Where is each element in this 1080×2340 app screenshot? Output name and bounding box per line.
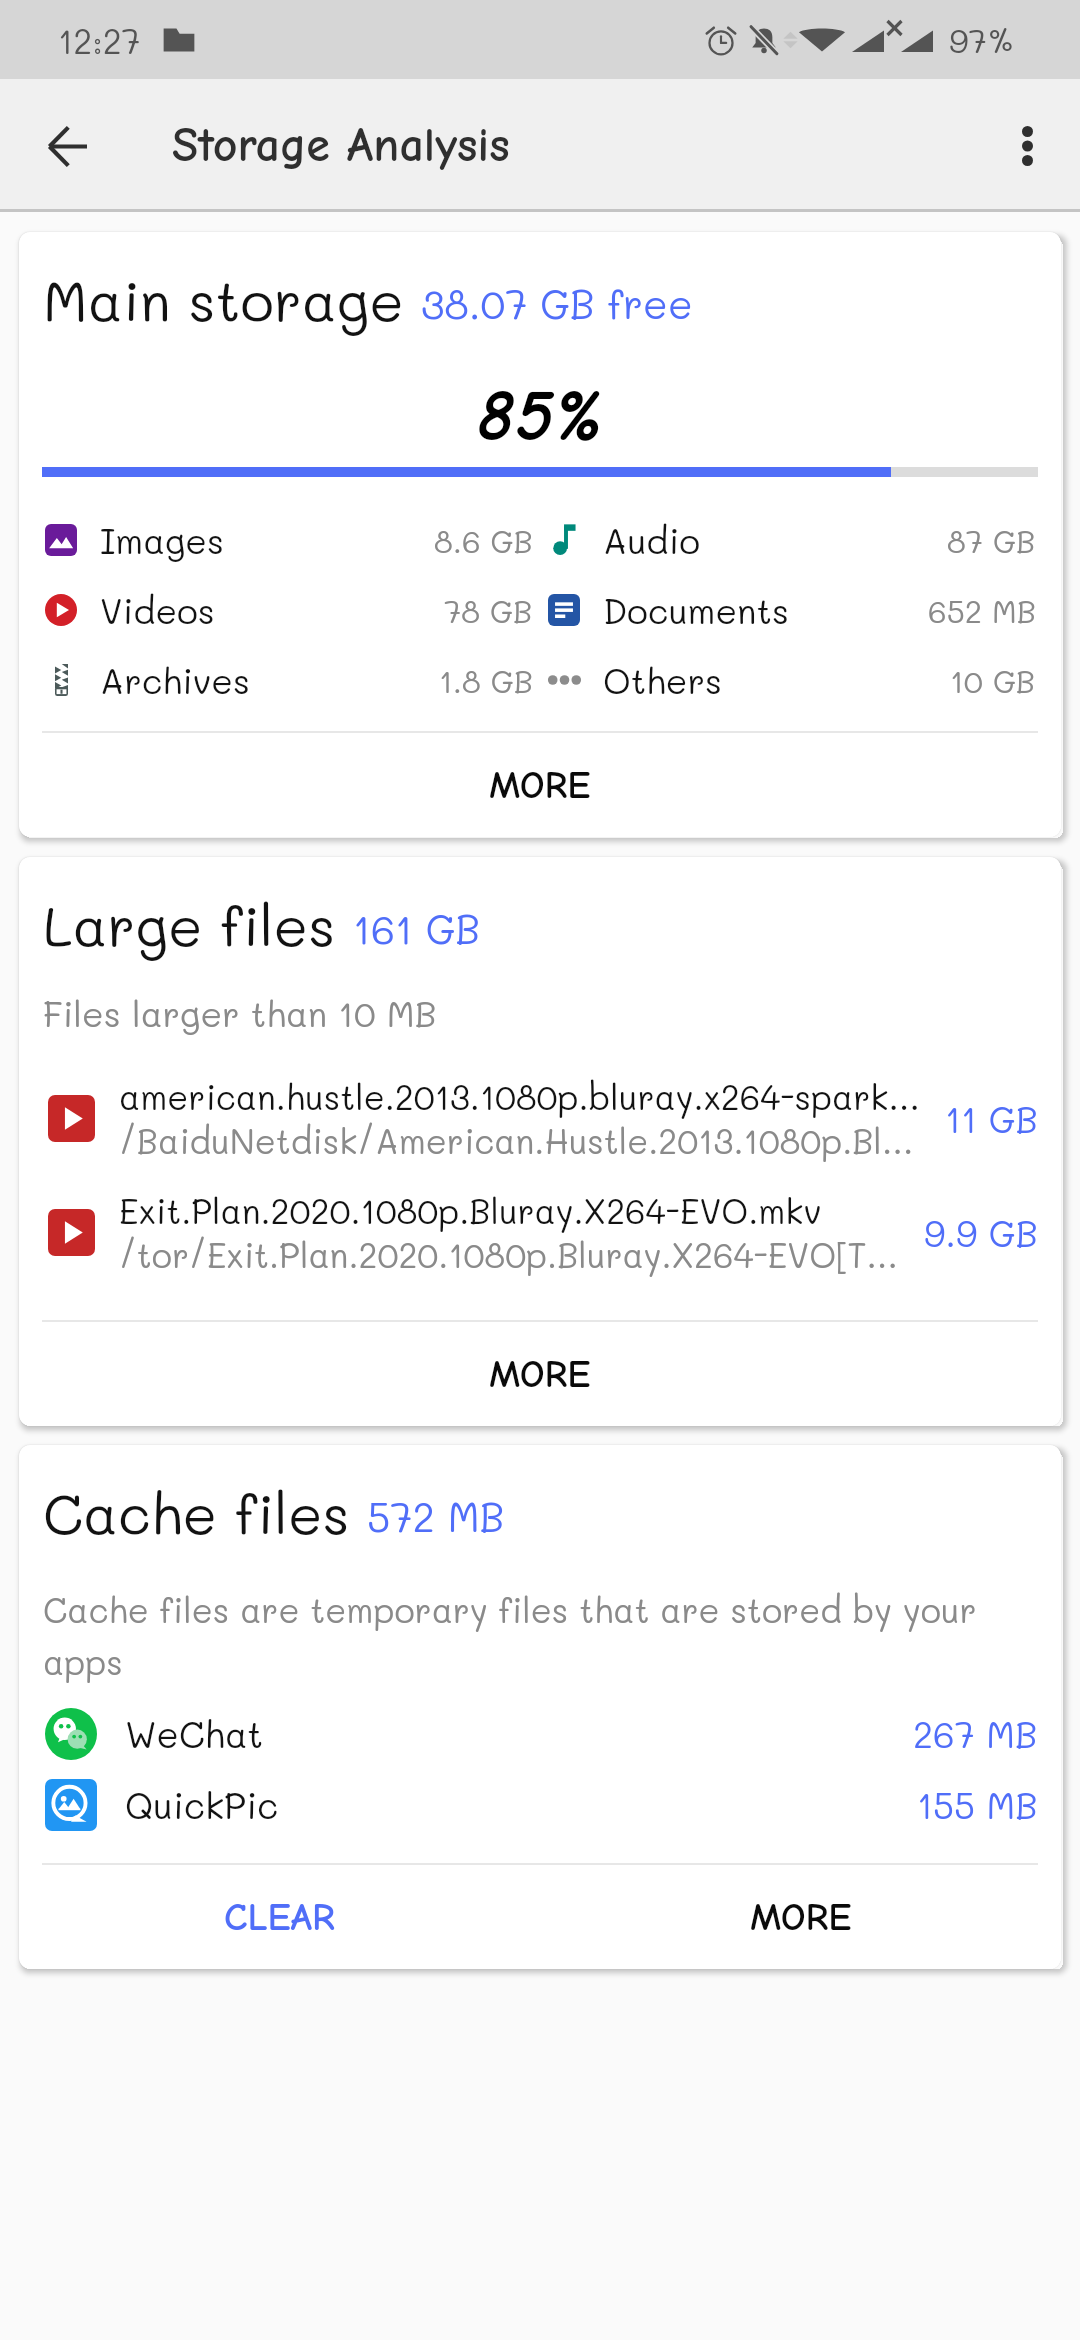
staticText: 8.6 GB [434, 520, 533, 560]
button[interactable]: WeChat [19, 1698, 1061, 1769]
button[interactable]: CLEAR [19, 1865, 540, 1969]
button[interactable]: american.hustle.2013.1080p.bluray.x264-s… [19, 1074, 1061, 1162]
staticText: Files larger than 10 MB [43, 990, 437, 1036]
button[interactable]: QuickPic [19, 1769, 1061, 1840]
button[interactable]: Others [547, 645, 1036, 715]
button[interactable]: Archives [44, 645, 533, 715]
staticText: 572 MB [367, 1490, 505, 1542]
button[interactable]: Audio [547, 505, 1036, 575]
button[interactable]: Images [44, 505, 533, 575]
staticText: QuickPic [125, 1781, 279, 1828]
staticText: 78 GB [444, 590, 533, 630]
staticText: 161 GB [353, 902, 481, 954]
button[interactable]: Documents [547, 575, 1036, 645]
staticText: american.hustle.2013.1080p.bluray.x264-s… [119, 1074, 920, 1118]
staticText: MORE [489, 1352, 591, 1397]
staticText: Cache files [43, 1476, 350, 1549]
button[interactable]: MORE [19, 733, 1061, 837]
staticText: 85% [19, 375, 1061, 458]
staticText: MORE [750, 1895, 852, 1940]
button[interactable]: Exit.Plan.2020.1080p.Bluray.X264-EVO.mkv [19, 1188, 1061, 1276]
staticText: Audio [603, 517, 701, 563]
staticText: Images [100, 517, 225, 563]
staticText: /BaiduNetdisk/American.Hustle.2013.1080p… [119, 1118, 914, 1162]
staticText: MORE [489, 763, 591, 808]
staticText: Documents [603, 587, 789, 633]
staticText: Videos [100, 587, 215, 633]
staticText: 652 MB [928, 590, 1036, 630]
button[interactable]: Videos [44, 575, 533, 645]
staticText: 38.07 GB free [421, 277, 693, 329]
button[interactable]: MORE [540, 1865, 1061, 1969]
staticText: Archives [100, 657, 251, 703]
staticText: 11 GB [945, 1095, 1038, 1142]
staticText: Main storage [43, 263, 404, 336]
staticText: 10 GB [950, 660, 1036, 700]
staticText: /tor/Exit.Plan.2020.1080p.Bluray.X264-EV… [119, 1232, 898, 1276]
staticText: 87 GB [947, 520, 1036, 560]
staticText: Large files [43, 888, 336, 961]
staticText: Storage Analysis [172, 118, 510, 173]
button[interactable]: More options [982, 101, 1072, 191]
staticText: 12:27 [58, 18, 141, 62]
staticText: 97% [949, 18, 1016, 61]
staticText: 9.9 GB [924, 1209, 1038, 1256]
staticText: 267 MB [913, 1710, 1038, 1757]
staticText: Cache files are temporary files that are… [43, 1587, 1030, 1684]
staticText: Exit.Plan.2020.1080p.Bluray.X264-EVO.mkv [119, 1188, 822, 1232]
button[interactable]: MORE [19, 1322, 1061, 1426]
button[interactable]: Back [22, 101, 112, 191]
staticText: Others [603, 657, 723, 703]
staticText: 155 MB [917, 1781, 1038, 1828]
staticText: WeChat [125, 1710, 264, 1757]
staticText: CLEAR [224, 1895, 335, 1940]
staticText: 1.8 GB [439, 660, 533, 700]
